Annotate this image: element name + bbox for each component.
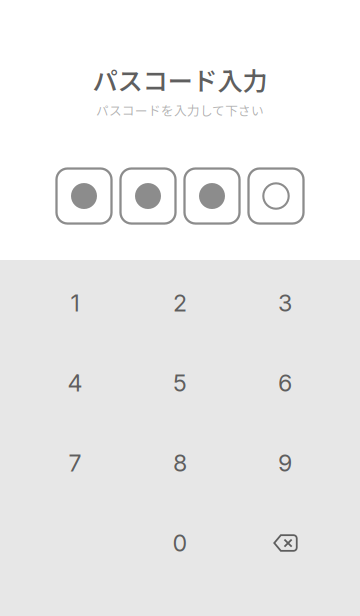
staticText: 9	[278, 449, 292, 477]
staticText: 8	[173, 449, 187, 477]
staticText: 1	[70, 289, 79, 317]
button[interactable]: 3	[232, 263, 337, 343]
button[interactable]: 7	[22, 423, 127, 503]
button[interactable]: Delete	[232, 503, 337, 583]
button[interactable]: 8	[127, 423, 232, 503]
button[interactable]: 4	[22, 343, 127, 423]
staticText: パスコード入力	[92, 61, 267, 98]
button[interactable]: 9	[232, 423, 337, 503]
staticText: 0	[172, 529, 187, 557]
staticText: 2	[173, 289, 187, 317]
staticText: パスコードを入力して下さい	[96, 101, 264, 119]
button[interactable]: 1	[22, 263, 127, 343]
staticText: 5	[173, 369, 187, 397]
staticText: 4	[67, 369, 82, 397]
button[interactable]: 2	[127, 263, 232, 343]
staticText: 6	[278, 369, 292, 397]
button[interactable]: 5	[127, 343, 232, 423]
staticText: 7	[68, 449, 81, 477]
staticText: 3	[278, 289, 292, 317]
button[interactable]: 0	[127, 503, 232, 583]
button[interactable]: 6	[232, 343, 337, 423]
